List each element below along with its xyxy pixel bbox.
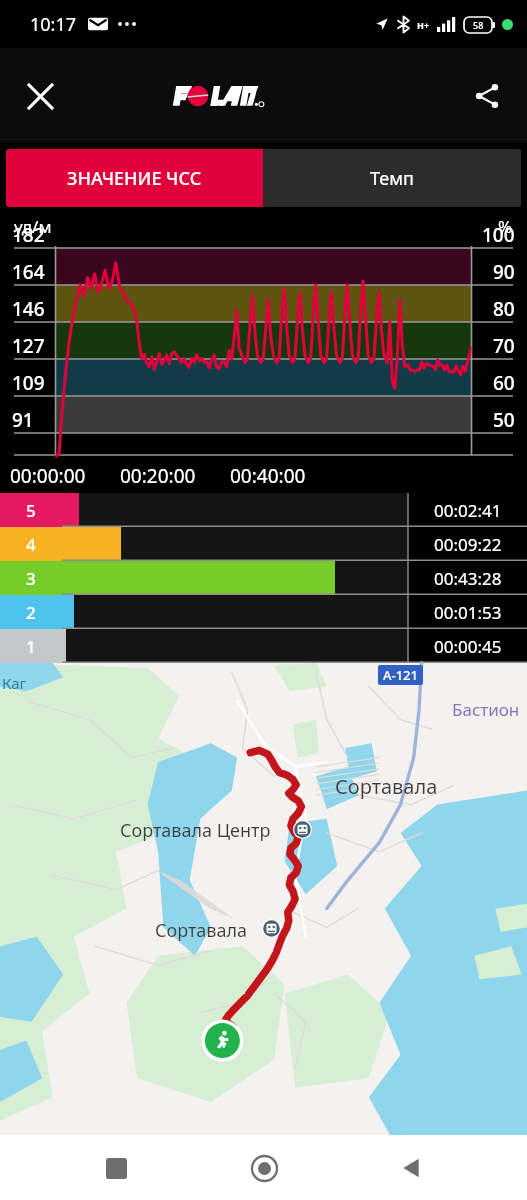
- button[interactable]: 5: [0, 493, 527, 527]
- staticText: Бастион: [452, 698, 520, 721]
- staticText: 58: [473, 19, 484, 31]
- staticText: 70: [493, 333, 515, 359]
- button[interactable]: Recent apps: [85, 1137, 147, 1199]
- staticText: 00:40:00: [230, 463, 306, 489]
- staticText: 146: [12, 296, 45, 322]
- staticText: Каг: [2, 673, 27, 693]
- button[interactable]: 3: [0, 561, 527, 595]
- staticText: 00:43:28: [434, 567, 502, 590]
- staticText: 50: [493, 407, 515, 433]
- button[interactable]: Close: [14, 70, 66, 122]
- staticText: Темп: [370, 166, 414, 191]
- staticText: 4: [26, 533, 36, 556]
- staticText: 127: [12, 333, 45, 359]
- staticText: Сортавала Центр: [120, 818, 271, 843]
- button[interactable]: Home: [233, 1137, 295, 1199]
- staticText: 1: [26, 635, 36, 658]
- staticText: 2: [26, 601, 36, 624]
- staticText: 182: [12, 222, 45, 248]
- staticText: %: [498, 215, 513, 238]
- staticText: 00:20:00: [120, 463, 196, 489]
- button[interactable]: 2: [0, 595, 527, 629]
- staticText: 3: [26, 567, 36, 590]
- staticText: Сортавала: [335, 773, 438, 800]
- staticText: 164: [12, 259, 45, 285]
- staticText: 00:02:41: [434, 499, 502, 522]
- staticText: 5: [26, 499, 36, 522]
- staticText: Сортавала: [155, 918, 248, 943]
- staticText: A-121: [383, 666, 418, 684]
- staticText: 10:17: [30, 12, 77, 37]
- staticText: 00:01:53: [434, 601, 502, 624]
- staticText: 00:00:00: [10, 463, 86, 489]
- staticText: 60: [493, 370, 515, 396]
- button[interactable]: Back: [380, 1137, 442, 1199]
- button[interactable]: 4: [0, 527, 527, 561]
- staticText: 100: [482, 222, 515, 248]
- button[interactable]: Share: [461, 70, 513, 122]
- staticText: 109: [12, 370, 45, 396]
- staticText: 90: [493, 259, 515, 285]
- staticText: 80: [493, 296, 515, 322]
- staticText: 91: [12, 407, 34, 433]
- staticText: H+: [417, 19, 430, 31]
- button[interactable]: 1: [0, 629, 527, 663]
- staticText: уд/м: [14, 215, 52, 238]
- staticText: 00:00:45: [434, 635, 502, 658]
- button[interactable]: ЗНАЧЕНИЕ ЧСС: [6, 149, 263, 207]
- staticText: 00:09:22: [434, 533, 502, 556]
- staticText: ЗНАЧЕНИЕ ЧСС: [67, 166, 202, 191]
- button[interactable]: Темп: [263, 149, 521, 207]
